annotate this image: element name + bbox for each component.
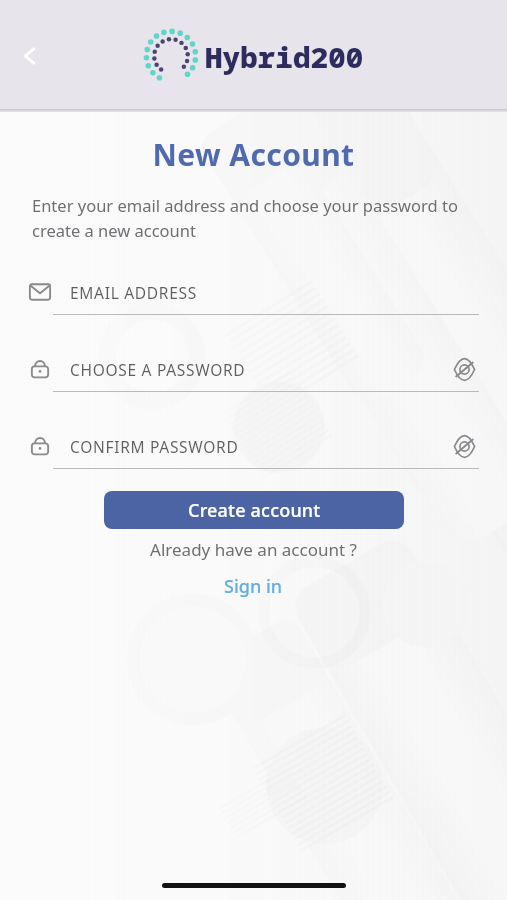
staticText: CHOOSE A PASSWORD xyxy=(70,359,246,380)
staticText: CONFIRM PASSWORD xyxy=(70,436,239,457)
staticText: EMAIL ADDRESS xyxy=(70,282,197,303)
staticText: Already have an account ? xyxy=(0,538,507,561)
staticText: New Account xyxy=(0,134,507,175)
button[interactable]: Create account xyxy=(104,491,404,529)
button[interactable]: EMAIL ADDRESS xyxy=(14,270,493,314)
staticText: Enter your email address and choose your… xyxy=(32,194,463,241)
button[interactable]: CONFIRM PASSWORD xyxy=(14,424,493,468)
button[interactable]: Back xyxy=(8,34,52,78)
staticText: Create account xyxy=(188,498,321,523)
staticText: Hybrid200 xyxy=(205,37,364,76)
staticText: Sign in xyxy=(224,574,283,599)
button[interactable]: Sign in xyxy=(206,571,301,602)
button[interactable]: Show password xyxy=(444,349,484,389)
button[interactable]: Show password xyxy=(444,426,484,466)
button[interactable]: CHOOSE A PASSWORD xyxy=(14,347,493,391)
